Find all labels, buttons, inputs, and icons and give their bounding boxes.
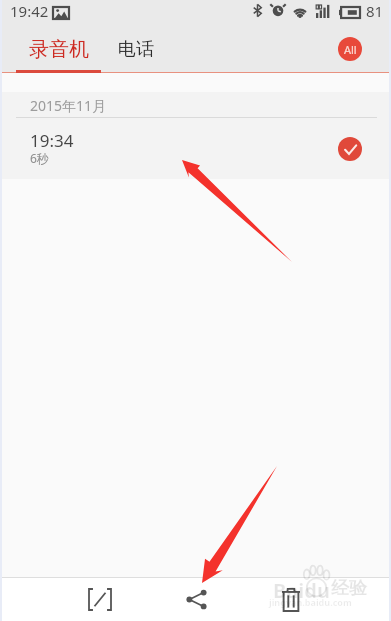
button[interactable]: Delete — [253, 578, 329, 621]
staticText: 19:42 — [10, 1, 49, 21]
button[interactable]: Share — [158, 578, 234, 621]
staticText: 经验 — [331, 577, 367, 600]
staticText: jingyan.baidu.com — [269, 596, 352, 608]
staticText: Baidu — [273, 577, 330, 604]
staticText: 19:34 — [30, 129, 74, 152]
button[interactable]: Edit — [62, 578, 138, 621]
staticText: 81 — [366, 1, 384, 21]
button[interactable]: 录音机 — [16, 24, 101, 75]
button[interactable]: 19:34 — [0, 118, 391, 179]
staticText: 6秒 — [30, 150, 49, 166]
staticText: All — [344, 42, 357, 57]
other: Selected — [338, 137, 362, 161]
staticText: 录音机 — [29, 37, 89, 62]
staticText: 2015年11月 — [30, 96, 107, 115]
staticText: 电话 — [118, 38, 154, 61]
button[interactable]: All — [338, 37, 362, 61]
button[interactable]: 电话 — [105, 24, 167, 75]
